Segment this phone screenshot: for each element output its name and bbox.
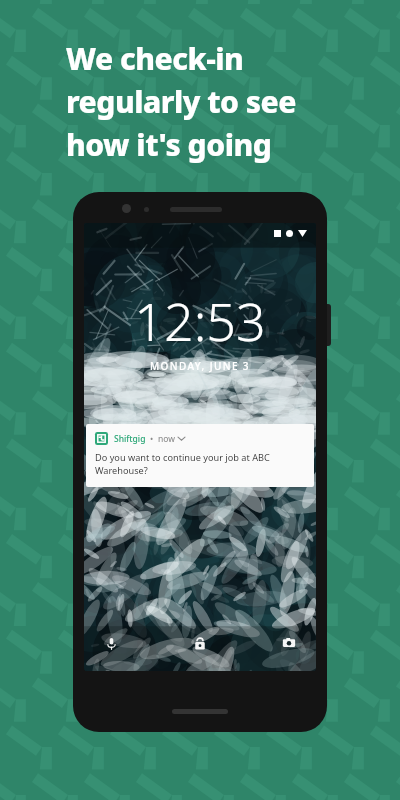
staticText: now (158, 433, 175, 445)
staticText: Do you want to continue your job at ABC … (95, 451, 305, 477)
button[interactable]: Voice assistant (100, 632, 122, 654)
button[interactable]: Lock (189, 633, 211, 655)
button[interactable]: Camera (278, 632, 300, 654)
staticText: regularly to see (66, 81, 296, 122)
staticText: Shiftgig (114, 433, 146, 445)
staticText: • (150, 433, 154, 445)
staticText: MONDAY, JUNE 3 (150, 359, 250, 373)
staticText: 12:53 (134, 285, 266, 356)
staticText: how it's going (66, 124, 272, 165)
staticText: We check-in (66, 38, 244, 79)
button[interactable]: Shiftgig (86, 424, 314, 487)
